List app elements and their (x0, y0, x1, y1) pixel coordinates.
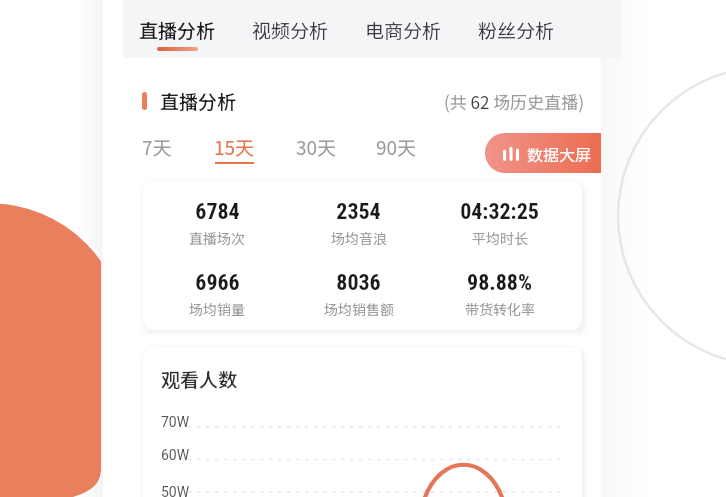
staticText: 场均音浪 (331, 228, 387, 248)
staticText: 电商分析 (365, 16, 442, 44)
staticText: 8036 (336, 270, 381, 296)
staticText: (共 62 场历史直播) (444, 89, 584, 114)
staticText: 60W (161, 447, 190, 463)
button[interactable]: 15天 (214, 133, 255, 164)
staticText: 7天 (142, 133, 172, 161)
staticText: 98.88% (467, 270, 532, 296)
staticText: 带货转化率 (465, 299, 535, 319)
staticText: 直播分析 (139, 16, 216, 44)
staticText: 粉丝分析 (478, 16, 555, 44)
staticText: 视频分析 (252, 16, 329, 44)
staticText: 观看人数 (161, 365, 238, 393)
button[interactable]: 30天 (296, 133, 337, 161)
staticText: 50W (161, 484, 190, 497)
button[interactable]: 数据大屏 (485, 133, 601, 173)
staticText: 场均销量 (189, 299, 245, 319)
button[interactable]: 电商分析 (347, 0, 460, 58)
staticText: 数据大屏 (527, 142, 592, 165)
button[interactable]: 直播分析 (121, 0, 234, 58)
staticText: 6784 (195, 199, 240, 225)
staticText: 场均销售额 (324, 299, 394, 319)
staticText: 直播场次 (189, 228, 245, 248)
button[interactable]: 7天 (142, 133, 172, 161)
button[interactable]: 90天 (376, 133, 417, 161)
staticText: 04:32:25 (460, 199, 539, 225)
staticText: 15天 (214, 133, 255, 161)
staticText: 2354 (336, 199, 381, 225)
button[interactable]: 视频分析 (234, 0, 347, 58)
staticText: 平均时长 (472, 228, 528, 248)
staticText: 6966 (195, 270, 240, 296)
staticText: 90天 (376, 133, 417, 161)
staticText: 直播分析 (160, 87, 237, 115)
other: 数据大屏 (503, 147, 519, 161)
staticText: 30天 (296, 133, 337, 161)
button[interactable]: 粉丝分析 (460, 0, 573, 58)
staticText: 70W (161, 414, 190, 430)
